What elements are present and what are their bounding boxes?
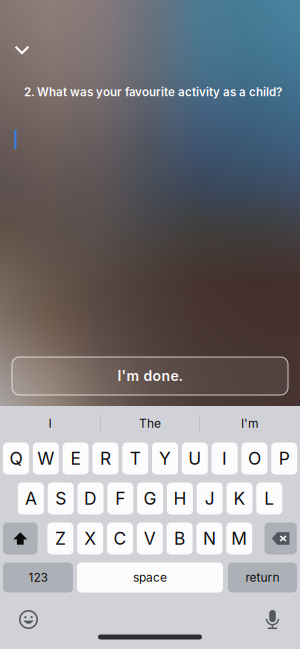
button[interactable]: I [212, 442, 238, 474]
staticText: F [115, 488, 125, 509]
staticText: X [84, 528, 96, 549]
staticText: A [25, 488, 37, 509]
button[interactable]: P [271, 442, 297, 474]
button[interactable]: I [0, 404, 100, 442]
staticText: L [264, 488, 274, 509]
button[interactable]: B [167, 522, 193, 554]
button[interactable]: F [107, 482, 133, 514]
button[interactable]: Q [3, 442, 29, 474]
button[interactable]: V [137, 522, 163, 554]
button[interactable]: Dictation [251, 604, 293, 634]
button[interactable]: L [256, 482, 282, 514]
button[interactable]: X [77, 522, 103, 554]
button[interactable]: I'm [200, 404, 300, 442]
button[interactable]: W [33, 442, 59, 474]
staticText: I [222, 448, 227, 469]
staticText: C [113, 528, 126, 549]
staticText: The [139, 416, 161, 431]
button[interactable]: E [63, 442, 89, 474]
staticText: Q [9, 448, 22, 469]
staticText: E [71, 448, 81, 469]
staticText: return [245, 570, 279, 585]
staticText: J [205, 488, 215, 509]
staticText: R [100, 448, 111, 469]
staticText: W [37, 448, 54, 469]
staticText: K [233, 488, 245, 509]
button[interactable]: U [182, 442, 208, 474]
button[interactable]: The [101, 404, 199, 442]
button[interactable]: 123 [3, 562, 73, 592]
staticText: D [84, 488, 97, 509]
button[interactable]: return [228, 562, 297, 592]
button[interactable]: Z [47, 522, 73, 554]
staticText: G [144, 488, 157, 509]
staticText: T [130, 448, 141, 469]
staticText: B [174, 528, 185, 549]
staticText: O [248, 448, 261, 469]
button[interactable]: Dismiss [1, 33, 43, 67]
button[interactable]: space [77, 562, 223, 592]
staticText: 2. What was your favourite activity as a… [24, 85, 282, 99]
button[interactable]: A [18, 482, 44, 514]
button[interactable]: J [197, 482, 223, 514]
staticText: Z [55, 528, 66, 549]
button[interactable]: D [77, 482, 103, 514]
button[interactable]: Delete [265, 522, 297, 554]
button[interactable]: H [167, 482, 193, 514]
staticText: P [279, 448, 290, 469]
button[interactable]: R [92, 442, 118, 474]
button[interactable]: Emoji keyboard [7, 604, 49, 634]
button[interactable]: S [48, 482, 74, 514]
staticText: I'm [241, 416, 259, 431]
button[interactable]: Y [152, 442, 178, 474]
staticText: 123 [28, 570, 47, 585]
button[interactable]: I'm done. [12, 357, 288, 395]
staticText: V [144, 528, 156, 549]
staticText: M [231, 528, 247, 549]
button[interactable]: T [122, 442, 148, 474]
button[interactable]: M [226, 522, 252, 554]
staticText: Y [159, 448, 171, 469]
button[interactable]: G [137, 482, 163, 514]
staticText: S [55, 488, 66, 509]
staticText: I'm done. [117, 367, 182, 384]
button[interactable]: C [107, 522, 133, 554]
staticText: H [173, 488, 186, 509]
button[interactable]: K [226, 482, 252, 514]
staticText: I [48, 416, 51, 431]
staticText: U [188, 448, 201, 469]
button[interactable]: N [196, 522, 222, 554]
button[interactable]: O [241, 442, 267, 474]
staticText: space [133, 570, 167, 585]
button[interactable]: Shift [3, 522, 38, 554]
staticText: N [203, 528, 216, 549]
